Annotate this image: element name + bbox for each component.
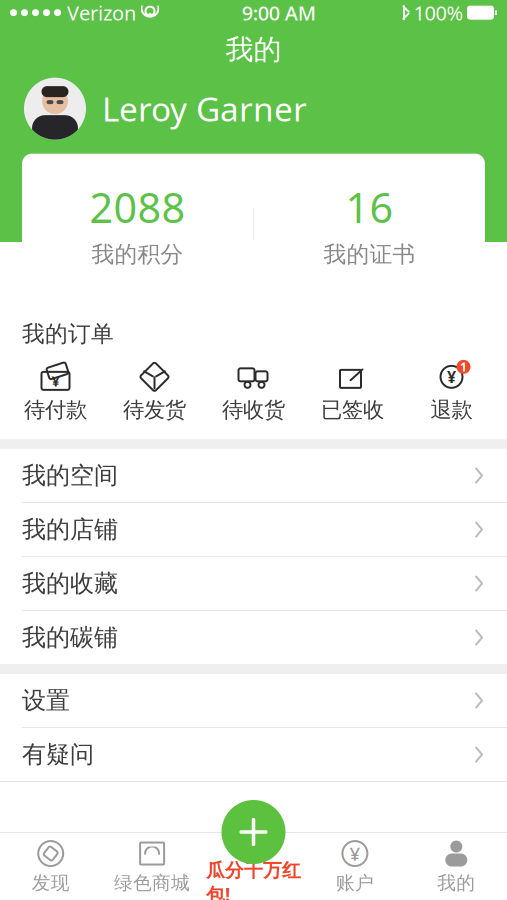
staticText: 有疑问 — [22, 740, 94, 769]
button[interactable]: 绿色商城 — [101, 831, 203, 900]
staticText: 我的 — [225, 32, 281, 67]
staticText: 账户 — [336, 871, 374, 894]
staticText: 退款 — [430, 397, 472, 423]
staticText: 100% — [413, 0, 463, 26]
staticText: 我的店铺 — [22, 515, 118, 544]
staticText: ¥ — [447, 366, 456, 387]
button[interactable]: 16 — [254, 154, 485, 294]
button[interactable]: ¥ — [304, 831, 406, 900]
staticText: 我的收藏 — [22, 569, 118, 598]
button[interactable]: 我的碳铺 — [0, 611, 507, 664]
button[interactable]: 我的店铺 — [0, 503, 507, 557]
staticText: ¥ — [51, 371, 59, 391]
button[interactable]: 2088 — [22, 154, 253, 294]
staticText: 2088 — [89, 180, 185, 234]
button[interactable]: 待发货 — [105, 362, 204, 423]
button[interactable]: 我的 — [406, 831, 507, 900]
staticText: 1 — [460, 359, 467, 375]
button[interactable]: 已签收 — [303, 362, 402, 423]
staticText: 设置 — [22, 686, 70, 715]
staticText: 16 — [345, 180, 393, 234]
staticText: 已签收 — [321, 397, 384, 423]
staticText: 待发货 — [123, 397, 186, 423]
staticText: Verizon — [67, 0, 136, 26]
staticText: 9:00 AM — [242, 0, 316, 26]
button[interactable]: 瓜分千万红包! — [203, 819, 304, 900]
staticText: 我的空间 — [22, 461, 118, 490]
staticText: 绿色商城 — [114, 871, 190, 894]
staticText: 发现 — [32, 871, 70, 894]
staticText: 我的积分 — [91, 240, 183, 268]
button[interactable]: 设置 — [0, 674, 507, 728]
button[interactable]: 发现 — [0, 831, 101, 900]
staticText: 待付款 — [24, 397, 87, 423]
staticText: 我的证书 — [323, 240, 415, 268]
staticText: Leroy Garner — [102, 86, 307, 131]
staticText: 我的碳铺 — [22, 623, 118, 652]
button[interactable]: 待收货 — [204, 362, 303, 423]
button[interactable]: ¥ — [402, 362, 501, 423]
button[interactable]: 有疑问 — [0, 728, 507, 781]
staticText: 待收货 — [222, 397, 285, 423]
staticText: 我的 — [437, 871, 475, 894]
button[interactable]: 我的收藏 — [0, 557, 507, 611]
staticText: ¥ — [349, 841, 360, 866]
button[interactable]: 我的空间 — [0, 449, 507, 503]
button[interactable]: ¥ — [6, 362, 105, 423]
staticText: 我的订单 — [22, 320, 114, 348]
staticText: 瓜分千万红包! — [206, 859, 301, 900]
